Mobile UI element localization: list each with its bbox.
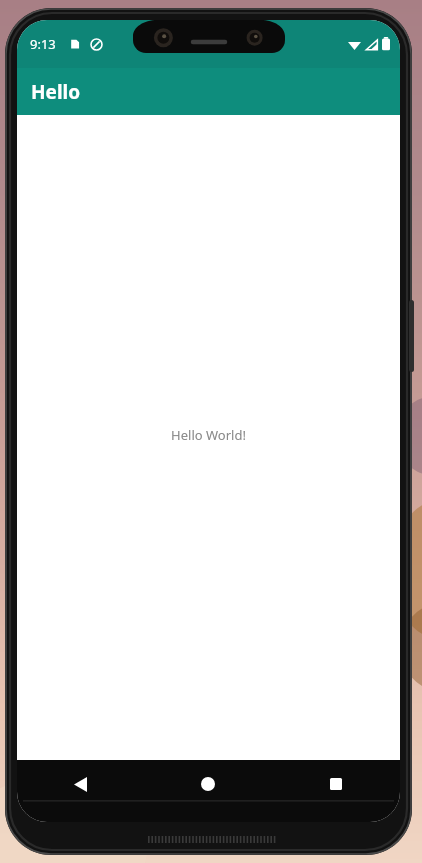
staticText: Hello (31, 79, 81, 105)
button[interactable]: Hello (17, 68, 400, 115)
button[interactable]: Recent apps (272, 760, 400, 822)
button[interactable]: Home (144, 760, 272, 822)
button[interactable]: Back (17, 760, 144, 822)
staticText: 9:13 (30, 35, 56, 53)
staticText: Hello World! (171, 426, 246, 444)
